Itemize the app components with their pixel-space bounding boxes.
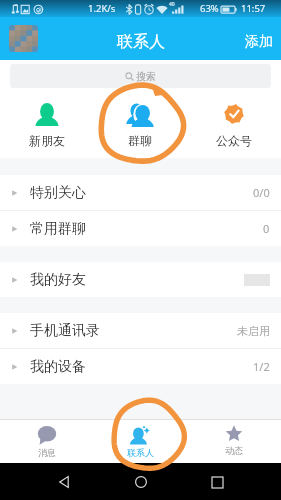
staticText: 动态 bbox=[225, 445, 243, 456]
staticText: 公众号 bbox=[216, 133, 252, 148]
staticText: 0 bbox=[263, 221, 270, 236]
staticText: 特别关心 bbox=[30, 184, 86, 202]
staticText: 63% bbox=[200, 2, 219, 15]
staticText: 1/2 bbox=[253, 359, 270, 374]
button[interactable]: Recents bbox=[205, 470, 229, 494]
button[interactable]: 手机通讯录 bbox=[0, 313, 281, 348]
button[interactable]: 我的设备 bbox=[0, 349, 281, 384]
staticText: 常用群聊 bbox=[30, 220, 86, 238]
button[interactable]: 我的好友 bbox=[0, 262, 281, 297]
staticText: 0/0 bbox=[253, 185, 270, 200]
button[interactable]: 公众号 bbox=[187, 88, 281, 148]
staticText: 我的设备 bbox=[30, 358, 86, 376]
button[interactable]: 特别关心 bbox=[0, 175, 281, 210]
button[interactable]: 添加 bbox=[237, 25, 281, 59]
staticText: 11:57 bbox=[241, 2, 266, 15]
staticText: 群聊 bbox=[128, 133, 152, 148]
staticText: 未启用 bbox=[237, 324, 270, 338]
button[interactable]: 群聊 bbox=[93, 88, 187, 148]
staticText: 我的好友 bbox=[30, 271, 86, 289]
button[interactable]: 联系人 bbox=[93, 420, 187, 458]
button[interactable]: Back bbox=[52, 470, 76, 494]
button[interactable]: 搜索 bbox=[10, 64, 271, 88]
button[interactable]: 新朋友 bbox=[0, 88, 93, 148]
staticText: 搜索 bbox=[136, 70, 156, 83]
staticText: 添加 bbox=[245, 33, 273, 51]
staticText: 手机通讯录 bbox=[30, 322, 100, 340]
staticText: 1.2K/s bbox=[88, 2, 116, 15]
button[interactable]: Home bbox=[129, 470, 153, 494]
button[interactable]: 常用群聊 bbox=[0, 211, 281, 246]
staticText: 联系人 bbox=[127, 447, 154, 458]
staticText: 新朋友 bbox=[29, 133, 65, 148]
staticText: 40 bbox=[169, 1, 175, 8]
staticText: 联系人 bbox=[117, 32, 165, 52]
button[interactable]: 动态 bbox=[187, 420, 281, 456]
button[interactable]: Profile bbox=[9, 25, 38, 52]
staticText: 消息 bbox=[38, 447, 56, 458]
button[interactable]: 消息 bbox=[0, 420, 93, 458]
